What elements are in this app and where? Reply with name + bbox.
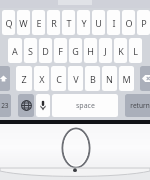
staticText: L — [133, 45, 138, 57]
button[interactable]: N — [102, 66, 117, 91]
button[interactable]: S — [24, 38, 37, 63]
staticText: space — [76, 101, 95, 111]
button[interactable]: Y — [77, 10, 90, 35]
button[interactable]: F — [54, 38, 67, 63]
button[interactable]: U — [92, 10, 105, 35]
staticText: U — [95, 17, 102, 29]
staticText: O — [125, 17, 133, 29]
staticText: M — [122, 73, 131, 85]
button[interactable]: B — [85, 66, 100, 91]
staticText: Q — [5, 17, 13, 29]
staticText: T — [66, 17, 72, 29]
button[interactable]: C — [51, 66, 66, 91]
button[interactable]: X — [34, 66, 49, 91]
staticText: I — [112, 17, 116, 29]
button[interactable]: Q — [2, 10, 15, 35]
button[interactable]: G — [69, 38, 82, 63]
button[interactable]: E — [32, 10, 45, 35]
staticText: X — [39, 73, 45, 85]
button[interactable]: Z — [16, 66, 32, 91]
button[interactable]: Shift — [0, 66, 10, 91]
staticText: return — [130, 101, 150, 110]
button[interactable]: space — [52, 94, 118, 117]
staticText: J — [104, 45, 107, 57]
staticText: P — [141, 17, 147, 29]
button[interactable]: T — [62, 10, 75, 35]
button[interactable]: V — [68, 66, 83, 91]
staticText: Y — [81, 17, 87, 29]
button[interactable]: Dictate — [36, 94, 50, 117]
staticText: 123 — [0, 101, 9, 110]
staticText: K — [118, 45, 124, 57]
staticText: A — [12, 45, 18, 57]
staticText: S — [28, 45, 33, 57]
staticText: W — [19, 17, 28, 29]
button[interactable]: H — [84, 38, 97, 63]
button[interactable]: I — [107, 10, 120, 35]
button[interactable]: J — [99, 38, 112, 63]
button[interactable]: Switch keyboard — [18, 94, 34, 117]
button[interactable]: R — [47, 10, 60, 35]
button[interactable]: 123 — [0, 94, 11, 117]
staticText: B — [90, 73, 96, 85]
button[interactable]: L — [129, 38, 142, 63]
button[interactable]: P — [137, 10, 150, 35]
staticText: D — [42, 45, 49, 57]
staticText: V — [73, 73, 79, 85]
button[interactable]: K — [114, 38, 127, 63]
button[interactable]: Backspace — [140, 66, 150, 91]
button[interactable]: A — [8, 38, 22, 63]
staticText: Z — [21, 73, 27, 85]
button[interactable]: O — [122, 10, 135, 35]
staticText: N — [106, 73, 113, 85]
staticText: G — [72, 45, 79, 57]
button[interactable]: Home — [61, 127, 91, 169]
staticText: C — [56, 73, 62, 85]
staticText: R — [51, 17, 57, 29]
staticText: E — [36, 17, 42, 29]
staticText: H — [87, 45, 94, 57]
button[interactable]: D — [39, 38, 52, 63]
button[interactable]: return — [125, 94, 150, 117]
button[interactable]: M — [119, 66, 134, 91]
button[interactable]: W — [17, 10, 30, 35]
staticText: F — [58, 45, 63, 57]
